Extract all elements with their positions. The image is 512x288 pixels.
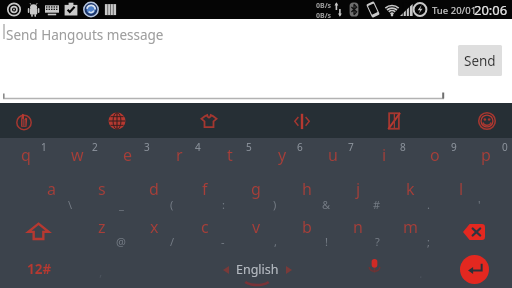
staticText: Send Hangouts message [6, 26, 164, 44]
staticText: , [274, 234, 277, 248]
button[interactable] [333, 210, 384, 248]
staticText: j [356, 178, 361, 200]
staticText: a [47, 178, 56, 200]
staticText: ! [325, 234, 328, 248]
staticText: 5 [246, 140, 252, 154]
staticText: 2 [92, 140, 98, 154]
button[interactable] [230, 210, 281, 248]
staticText: ' [478, 197, 481, 211]
staticText: l [459, 178, 464, 200]
staticText: 7 [348, 140, 354, 154]
staticText: g [251, 178, 261, 200]
staticText: 6 [297, 140, 303, 154]
button[interactable]: Language [91, 103, 143, 138]
button[interactable] [154, 138, 205, 176]
button[interactable] [179, 172, 230, 210]
staticText: & [322, 197, 331, 211]
staticText: m [403, 216, 418, 238]
button[interactable] [230, 172, 281, 210]
staticText: e [123, 144, 133, 166]
staticText: d [149, 178, 159, 200]
button[interactable] [102, 138, 153, 176]
staticText: k [406, 178, 415, 200]
staticText: w [71, 144, 84, 166]
staticText: o [430, 144, 440, 166]
staticText: ( [170, 197, 174, 211]
staticText: 3 [144, 140, 150, 154]
staticText: / [170, 234, 175, 248]
button[interactable] [435, 172, 486, 210]
button[interactable]: Shift [0, 213, 77, 250]
staticText: n [353, 216, 363, 238]
staticText: f [202, 178, 208, 200]
button[interactable]: Send [458, 45, 502, 76]
button[interactable] [256, 138, 307, 176]
button[interactable]: English [128, 250, 348, 288]
button[interactable] [26, 172, 77, 210]
staticText: r [176, 144, 183, 166]
button[interactable]: Emoji [461, 103, 512, 138]
button[interactable] [410, 138, 461, 176]
staticText: t [227, 144, 233, 166]
staticText: ; [427, 234, 430, 248]
staticText: 8 [400, 140, 406, 154]
button[interactable] [384, 210, 435, 248]
staticText: v [252, 216, 261, 238]
button[interactable] [282, 210, 333, 248]
staticText: _ [119, 197, 124, 211]
staticText: s [98, 178, 106, 200]
button[interactable]: Handwriting [0, 103, 50, 138]
staticText: 0B/s [316, 11, 332, 20]
staticText: English [236, 261, 279, 278]
staticText: i [382, 144, 387, 166]
button[interactable] [77, 172, 128, 210]
button[interactable] [205, 138, 256, 176]
button[interactable] [128, 172, 179, 210]
staticText: Send [464, 52, 496, 70]
staticText: q [21, 144, 31, 166]
button[interactable] [128, 210, 179, 248]
staticText: 9 [451, 140, 457, 154]
staticText: ? [375, 234, 380, 248]
button[interactable] [333, 172, 384, 210]
staticText: y [278, 144, 287, 166]
staticText: ) [273, 197, 277, 211]
button[interactable] [461, 138, 512, 176]
staticText: z [98, 216, 106, 238]
staticText: x [150, 216, 159, 238]
button[interactable] [282, 172, 333, 210]
button[interactable] [77, 210, 128, 248]
staticText: u [328, 144, 338, 166]
staticText: b [302, 216, 312, 238]
button[interactable]: Resize keyboard [276, 103, 328, 138]
button[interactable] [0, 138, 51, 176]
button[interactable] [179, 210, 230, 248]
staticText: Tue 20/01 [432, 4, 477, 17]
staticText: c [201, 216, 209, 238]
button[interactable]: 12# [0, 250, 77, 288]
staticText: . [427, 197, 430, 211]
button[interactable]: Enter [435, 250, 512, 288]
staticText: # [373, 197, 381, 211]
button[interactable] [51, 138, 102, 176]
staticText: \ [68, 197, 73, 211]
staticText: 4 [195, 140, 201, 154]
staticText: : [222, 197, 225, 211]
staticText: h [302, 178, 312, 200]
button[interactable] [384, 172, 435, 210]
button[interactable] [307, 138, 358, 176]
button[interactable] [358, 138, 409, 176]
button[interactable]: Backspace [435, 213, 512, 250]
staticText: 0 [502, 140, 508, 154]
staticText: @ [116, 234, 126, 248]
button[interactable]: One-handed mode [368, 103, 420, 138]
button[interactable]: Theme [183, 103, 235, 138]
button[interactable]: Voice input [348, 250, 400, 288]
staticText: - [221, 234, 225, 248]
staticText: 1 [41, 140, 47, 154]
staticText: 20:06 [474, 1, 508, 19]
